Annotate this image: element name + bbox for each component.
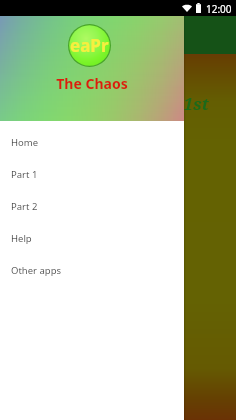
button[interactable]: Other apps	[0, 254, 184, 286]
staticText: Home	[11, 136, 39, 149]
button[interactable]: Part 2	[0, 190, 184, 222]
staticText: eaPr	[70, 34, 109, 57]
staticText: Part 1st	[140, 92, 209, 115]
button[interactable]: Part 1	[0, 158, 184, 190]
staticText: Part 2	[11, 200, 38, 213]
button[interactable]: Help	[0, 222, 184, 254]
staticText: Other apps	[11, 264, 62, 277]
staticText: The Chaos	[56, 74, 128, 93]
staticText: Part 1	[11, 168, 38, 181]
button[interactable]: Home	[0, 126, 184, 158]
staticText: 12:00	[206, 2, 232, 16]
staticText: Help	[11, 232, 32, 245]
